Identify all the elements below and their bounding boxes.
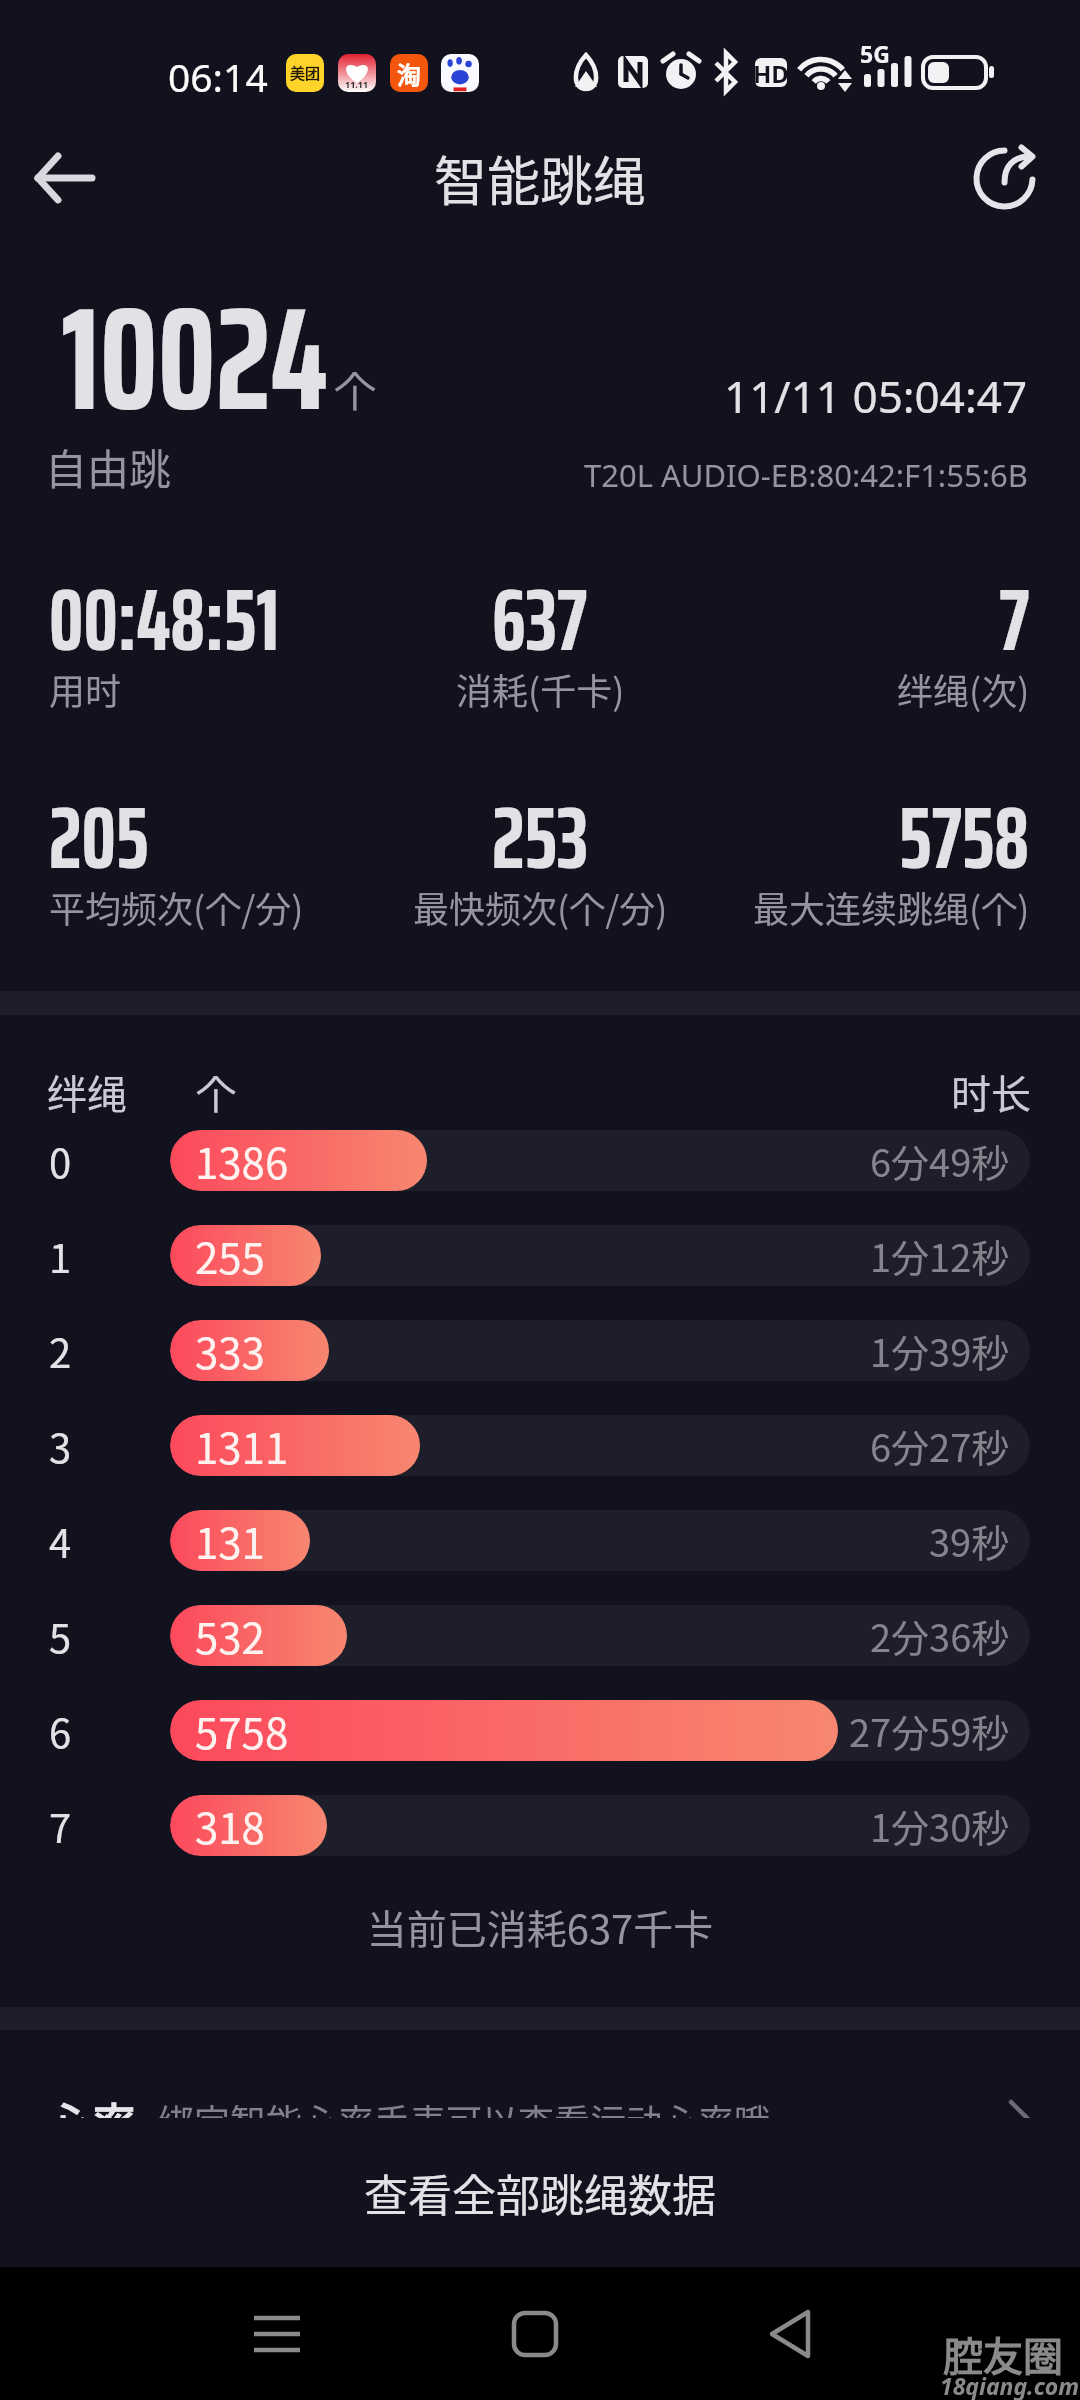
button[interactable]: Home <box>485 2284 585 2384</box>
staticText: 2 <box>49 1322 72 1380</box>
button[interactable]: Recent apps <box>227 2284 327 2384</box>
staticText: 18qiang.com <box>940 2370 1080 2400</box>
staticText: 自由跳 <box>45 436 172 497</box>
staticText: 205 <box>49 770 149 880</box>
button[interactable]: Share <box>959 133 1050 224</box>
button[interactable]: 心率 <box>0 2030 1080 2125</box>
staticText: 1分30秒 <box>870 1798 1010 1853</box>
staticText: 1386 <box>195 1130 289 1191</box>
staticText: 平均频次(个/分) <box>49 881 304 933</box>
staticText: 用时 <box>49 663 122 715</box>
staticText: 最快频次(个/分) <box>413 881 668 933</box>
staticText: 绑定智能心率手表可以查看运动心率哦 <box>158 2094 771 2125</box>
staticText: 5G <box>860 38 890 69</box>
staticText: 11/11 05:04:47 <box>724 366 1028 426</box>
staticText: 时长 <box>951 1063 1031 1119</box>
staticText: 当前已消耗637千卡 <box>0 1898 1080 1956</box>
button[interactable]: Back <box>18 130 114 226</box>
staticText: 10024 <box>61 244 328 472</box>
staticText: 5758 <box>195 1700 289 1761</box>
staticText: 2分36秒 <box>870 1608 1010 1663</box>
staticText: 3 <box>49 1417 72 1475</box>
staticText: 5758 <box>899 770 1030 880</box>
staticText: 心率 <box>48 2090 136 2125</box>
staticText: 腔友圈 <box>943 2325 1063 2383</box>
staticText: 绊绳 <box>47 1063 127 1119</box>
staticText: 1311 <box>195 1415 289 1476</box>
staticText: 00:48:51 <box>49 552 280 662</box>
staticText: 0 <box>49 1132 72 1190</box>
staticText: 131 <box>195 1510 265 1571</box>
staticText: 637 <box>492 552 588 662</box>
staticText: 绊绳(次) <box>897 663 1030 715</box>
staticText: 1分39秒 <box>870 1323 1010 1378</box>
staticText: 淘 <box>397 56 421 91</box>
staticText: 消耗(千卡) <box>456 663 625 715</box>
staticText: 美团 <box>290 62 321 84</box>
staticText: T20L AUDIO-EB:80:42:F1:55:6B <box>584 454 1028 496</box>
button[interactable]: Back <box>741 2284 841 2384</box>
staticText: 7 <box>999 552 1030 662</box>
staticText: 253 <box>492 770 589 880</box>
staticText: 06:14 <box>168 50 268 103</box>
staticText: 333 <box>195 1320 265 1381</box>
staticText: 1 <box>49 1227 72 1285</box>
staticText: 7 <box>49 1797 72 1855</box>
staticText: 532 <box>195 1605 265 1666</box>
staticText: 最大连续跳绳(个) <box>753 881 1030 933</box>
staticText: 智能跳绳 <box>434 140 646 217</box>
staticText: 11.11 <box>345 78 369 90</box>
staticText: HD <box>753 57 789 90</box>
staticText: 6分27秒 <box>870 1418 1010 1473</box>
staticText: 318 <box>195 1795 265 1856</box>
button[interactable]: 查看全部跳绳数据 <box>0 2118 1080 2267</box>
staticText: 6 <box>49 1702 72 1760</box>
staticText: 255 <box>195 1225 265 1286</box>
staticText: 查看全部跳绳数据 <box>364 2161 716 2225</box>
staticText: 个 <box>334 358 377 419</box>
staticText: 39秒 <box>929 1513 1010 1568</box>
staticText: 个 <box>196 1063 236 1119</box>
staticText: 5 <box>49 1607 72 1665</box>
staticText: 4 <box>49 1512 72 1570</box>
staticText: 6分49秒 <box>870 1133 1010 1188</box>
staticText: 27分59秒 <box>849 1703 1010 1758</box>
staticText: 1分12秒 <box>870 1228 1010 1283</box>
